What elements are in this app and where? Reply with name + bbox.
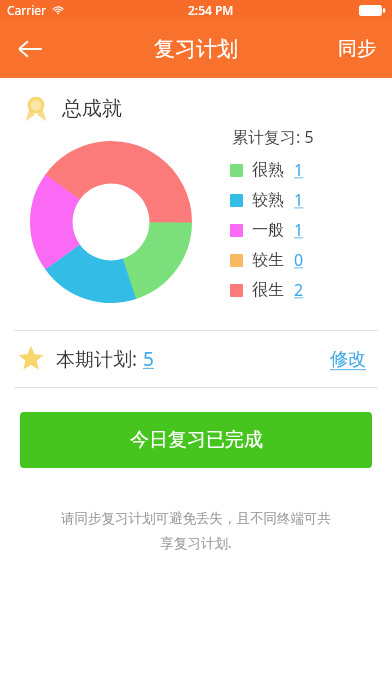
button[interactable]: 很生 (222, 276, 392, 304)
staticText: 累计复习: 5 (232, 126, 314, 148)
staticText: 2:54 PM (188, 2, 234, 18)
staticText: 复习计划 (154, 36, 238, 62)
staticText: 修改 (330, 348, 366, 371)
staticText: 1 (294, 159, 304, 181)
staticText: Carrier (7, 2, 47, 18)
staticText: 2 (294, 279, 304, 301)
button[interactable]: Back (0, 20, 60, 78)
staticText: 0 (294, 249, 304, 271)
staticText: 总成就 (62, 96, 122, 121)
button[interactable]: 一般 (222, 216, 392, 244)
staticText: 请同步复习计划可避免丢失，且不同终端可共 享复习计划. (26, 510, 366, 552)
staticText: 一般 (252, 220, 284, 240)
staticText: 很生 (252, 280, 284, 300)
button[interactable]: 今日复习已完成 (20, 412, 372, 468)
staticText: 1 (294, 219, 304, 241)
button[interactable]: 本期计划: (0, 331, 392, 387)
staticText: 较熟 (252, 190, 284, 210)
staticText: 较生 (252, 250, 284, 270)
staticText: 5 (143, 346, 154, 372)
button[interactable]: 修改 (326, 344, 370, 375)
staticText: 1 (294, 189, 304, 211)
staticText: 本期计划: (56, 346, 143, 372)
staticText: 很熟 (252, 160, 284, 180)
button[interactable]: 较熟 (222, 186, 392, 214)
staticText: 同步 (338, 37, 376, 61)
button[interactable]: 很熟 (222, 156, 392, 184)
staticText: 今日复习已完成 (130, 428, 263, 452)
button[interactable]: 较生 (222, 246, 392, 274)
button[interactable]: 同步 (322, 20, 392, 78)
